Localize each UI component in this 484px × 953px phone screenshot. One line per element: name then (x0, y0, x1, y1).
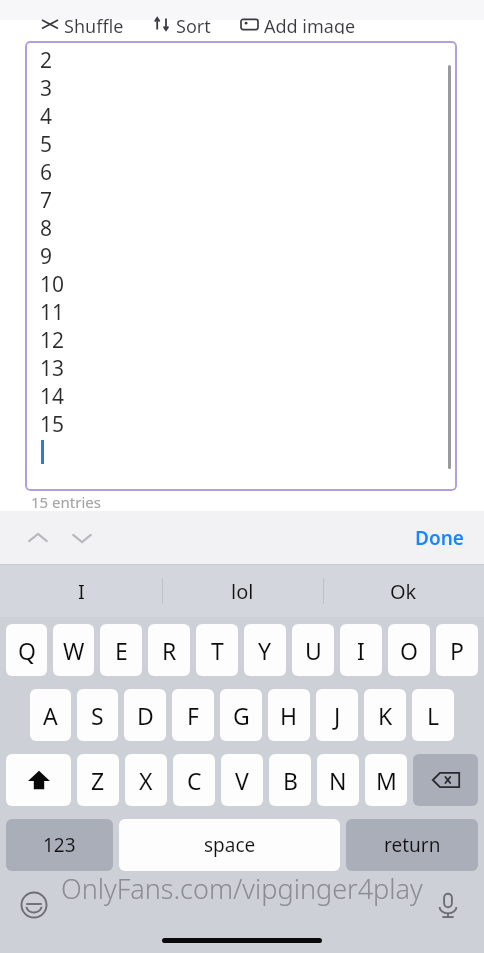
button[interactable]: Emoji (14, 885, 54, 925)
staticText: return (384, 832, 441, 858)
button[interactable]: space (119, 819, 340, 871)
staticText: X (139, 765, 153, 796)
staticText: O (400, 635, 418, 666)
button[interactable]: D (124, 689, 166, 741)
button[interactable]: Shuffle (38, 12, 128, 36)
staticText: OnlyFans.com/vipginger4play (61, 870, 423, 907)
button[interactable]: Previous field (20, 520, 56, 556)
button[interactable]: R (148, 624, 190, 676)
staticText: 14 (40, 382, 65, 410)
staticText: G (233, 700, 250, 731)
button[interactable]: Next field (64, 520, 100, 556)
staticText: Sort (176, 14, 211, 34)
button[interactable]: lol (162, 565, 323, 617)
button[interactable]: U (292, 624, 334, 676)
staticText: 9 (40, 242, 53, 270)
staticText: 15 (40, 410, 65, 438)
button[interactable]: T (196, 624, 238, 676)
staticText: Y (258, 635, 272, 666)
staticText: V (235, 765, 249, 796)
button[interactable]: Add image (237, 12, 360, 36)
button[interactable]: Done (407, 519, 472, 557)
staticText: P (450, 635, 464, 666)
button[interactable]: K (364, 689, 406, 741)
staticText: Ok (390, 578, 417, 605)
button[interactable]: S (77, 689, 118, 741)
staticText: W (63, 635, 85, 666)
staticText: L (427, 700, 440, 731)
button[interactable]: Dictation (428, 885, 468, 925)
button[interactable]: L (412, 689, 454, 741)
staticText: T (211, 635, 224, 666)
button[interactable]: E (100, 624, 142, 676)
staticText: 12 (40, 326, 65, 354)
button[interactable]: I (340, 624, 382, 676)
staticText: lol (231, 578, 254, 605)
staticText: N (329, 765, 347, 796)
button[interactable]: Y (244, 624, 286, 676)
button[interactable]: Backspace (413, 754, 478, 806)
staticText: 7 (40, 186, 53, 214)
button[interactable]: Shift (6, 754, 71, 806)
staticText: 5 (40, 130, 53, 158)
button[interactable]: A (30, 689, 71, 741)
button[interactable]: X (125, 754, 167, 806)
button[interactable]: N (317, 754, 359, 806)
button[interactable]: 123 (6, 819, 113, 871)
staticText: 8 (40, 214, 53, 242)
staticText: 15 entries (31, 492, 101, 510)
button[interactable]: Ok (323, 565, 484, 617)
staticText: 2 (40, 46, 53, 74)
button[interactable]: V (221, 754, 263, 806)
staticText: A (43, 700, 58, 731)
staticText: Done (415, 525, 464, 551)
button[interactable]: P (436, 624, 478, 676)
button[interactable]: O (388, 624, 430, 676)
staticText: Add image (264, 14, 356, 34)
staticText: D (137, 700, 154, 731)
button[interactable]: M (365, 754, 407, 806)
button[interactable]: F (172, 689, 214, 741)
button[interactable]: B (269, 754, 311, 806)
button[interactable]: Sort (150, 12, 215, 36)
button[interactable]: 1 (25, 41, 457, 491)
staticText: Z (91, 765, 105, 796)
staticText: B (283, 765, 298, 796)
staticText: M (376, 765, 397, 796)
staticText: 10 (40, 270, 65, 298)
staticText: 6 (40, 158, 53, 186)
staticText: 4 (40, 102, 53, 130)
staticText: 11 (40, 298, 65, 326)
button[interactable]: Q (6, 624, 47, 676)
staticText: I (357, 635, 365, 666)
staticText: E (115, 635, 128, 666)
button[interactable]: C (173, 754, 215, 806)
staticText: space (204, 832, 256, 858)
staticText: H (280, 700, 298, 731)
button[interactable]: G (220, 689, 262, 741)
staticText: U (305, 635, 322, 666)
staticText: 13 (40, 354, 65, 382)
staticText: R (162, 635, 177, 666)
button[interactable]: I (0, 565, 162, 617)
staticText: F (187, 700, 199, 731)
staticText: C (187, 765, 202, 796)
button[interactable]: H (268, 689, 310, 741)
button[interactable]: W (53, 624, 94, 676)
staticText: S (91, 700, 104, 731)
button[interactable]: return (346, 819, 478, 871)
staticText: J (334, 700, 341, 731)
staticText: Shuffle (64, 14, 124, 34)
staticText: 123 (43, 832, 76, 858)
staticText: K (378, 700, 393, 731)
staticText: I (78, 578, 85, 605)
staticText: Q (18, 635, 36, 666)
button[interactable]: J (316, 689, 358, 741)
button[interactable]: Z (77, 754, 119, 806)
staticText: 3 (40, 74, 53, 102)
